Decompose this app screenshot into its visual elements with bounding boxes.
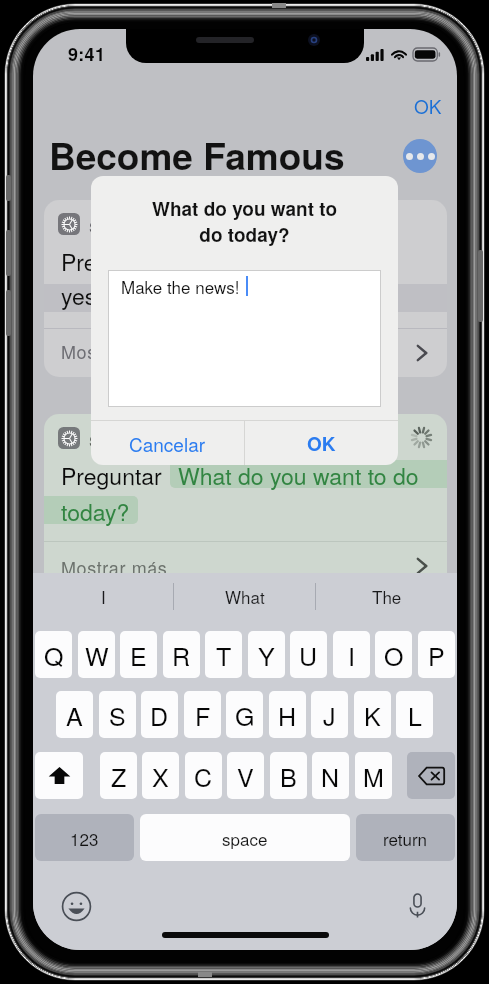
button[interactable]: I	[33, 573, 173, 619]
staticText: J	[323, 697, 336, 733]
staticText: C	[194, 758, 213, 794]
staticText: I	[101, 584, 106, 608]
button[interactable]: K	[354, 691, 391, 738]
staticText: What	[225, 584, 265, 608]
staticText: space	[222, 826, 268, 850]
staticText: U	[299, 637, 318, 673]
button[interactable]: C	[185, 752, 222, 799]
staticText: What do you want to do today?	[91, 195, 398, 248]
button[interactable]: R	[163, 631, 200, 678]
staticText: P	[428, 637, 445, 673]
button[interactable]: D	[141, 691, 178, 738]
button[interactable]: F	[184, 691, 221, 738]
staticText: Q	[44, 637, 64, 673]
button[interactable]: What	[174, 573, 315, 619]
staticText: Shortcuts	[89, 216, 153, 237]
staticText: F	[195, 697, 211, 733]
staticText: OK	[307, 430, 336, 457]
button[interactable]: space	[140, 814, 350, 861]
button[interactable]: 123	[35, 814, 134, 861]
button[interactable]: return	[356, 814, 455, 861]
button[interactable]: I	[333, 631, 370, 678]
staticText: yes	[61, 279, 97, 312]
staticText: L	[408, 697, 422, 733]
button[interactable]: OK	[245, 421, 398, 465]
staticText: Preguntar	[61, 459, 162, 492]
staticText: 9:41	[68, 41, 106, 67]
staticText: OK	[414, 92, 442, 119]
staticText: The	[372, 584, 402, 608]
button[interactable]: M	[355, 752, 392, 799]
button[interactable]: J	[311, 691, 348, 738]
button[interactable]: N	[312, 752, 349, 799]
button[interactable]: Z	[100, 752, 137, 799]
staticText: S	[109, 697, 126, 733]
button[interactable]: Q	[35, 631, 72, 678]
button[interactable]: O	[375, 631, 412, 678]
button[interactable]: Y	[248, 631, 285, 678]
staticText: Preguntar	[61, 245, 162, 278]
staticText: Cancelar	[129, 430, 206, 457]
staticText: Y	[258, 637, 275, 673]
button[interactable]: X	[142, 752, 179, 799]
staticText: T	[216, 637, 232, 673]
staticText: What do you want to do	[178, 459, 419, 492]
button[interactable]: The	[316, 573, 457, 619]
staticText: K	[364, 697, 381, 733]
staticText: I	[348, 637, 355, 673]
staticText: W	[85, 637, 109, 673]
button[interactable]: E	[120, 631, 157, 678]
button[interactable]: U	[290, 631, 327, 678]
staticText: Shortcuts	[89, 430, 153, 451]
staticText: Make the news!	[121, 274, 240, 298]
staticText: Mostrar más	[61, 338, 168, 364]
button[interactable]: Cancelar	[91, 421, 244, 465]
button[interactable]: Shortcuts	[44, 200, 447, 377]
button[interactable]: Emoji keyboard	[60, 890, 92, 922]
staticText: V	[237, 758, 254, 794]
staticText: E	[130, 637, 147, 673]
staticText: M	[363, 758, 384, 794]
staticText: Become Famous	[49, 128, 345, 181]
staticText: H	[278, 697, 297, 733]
button[interactable]: L	[396, 691, 433, 738]
button[interactable]: More options	[403, 139, 437, 173]
button[interactable]: OK	[406, 84, 450, 127]
button[interactable]: H	[269, 691, 306, 738]
staticText: B	[280, 758, 297, 794]
button[interactable]: W	[78, 631, 115, 678]
staticText: 123	[70, 826, 99, 850]
button[interactable]: Backspace	[407, 752, 455, 799]
staticText: R	[172, 637, 191, 673]
button[interactable]: Shortcuts	[44, 414, 447, 591]
staticText: G	[235, 697, 255, 733]
staticText: Mostrar más	[61, 554, 168, 580]
button[interactable]: B	[270, 752, 307, 799]
staticText: X	[152, 758, 169, 794]
button[interactable]: G	[226, 691, 263, 738]
staticText: Z	[111, 758, 127, 794]
button[interactable]: Dictation	[401, 890, 433, 922]
staticText: today?	[61, 495, 130, 528]
staticText: D	[150, 697, 169, 733]
staticText: O	[384, 637, 404, 673]
staticText: return	[383, 826, 428, 850]
button[interactable]: P	[418, 631, 455, 678]
staticText: A	[66, 697, 83, 733]
button[interactable]: T	[205, 631, 242, 678]
button[interactable]: V	[227, 752, 264, 799]
button[interactable]: A	[56, 691, 93, 738]
staticText: N	[321, 758, 340, 794]
button[interactable]: Shift	[35, 752, 83, 799]
button[interactable]: S	[99, 691, 136, 738]
